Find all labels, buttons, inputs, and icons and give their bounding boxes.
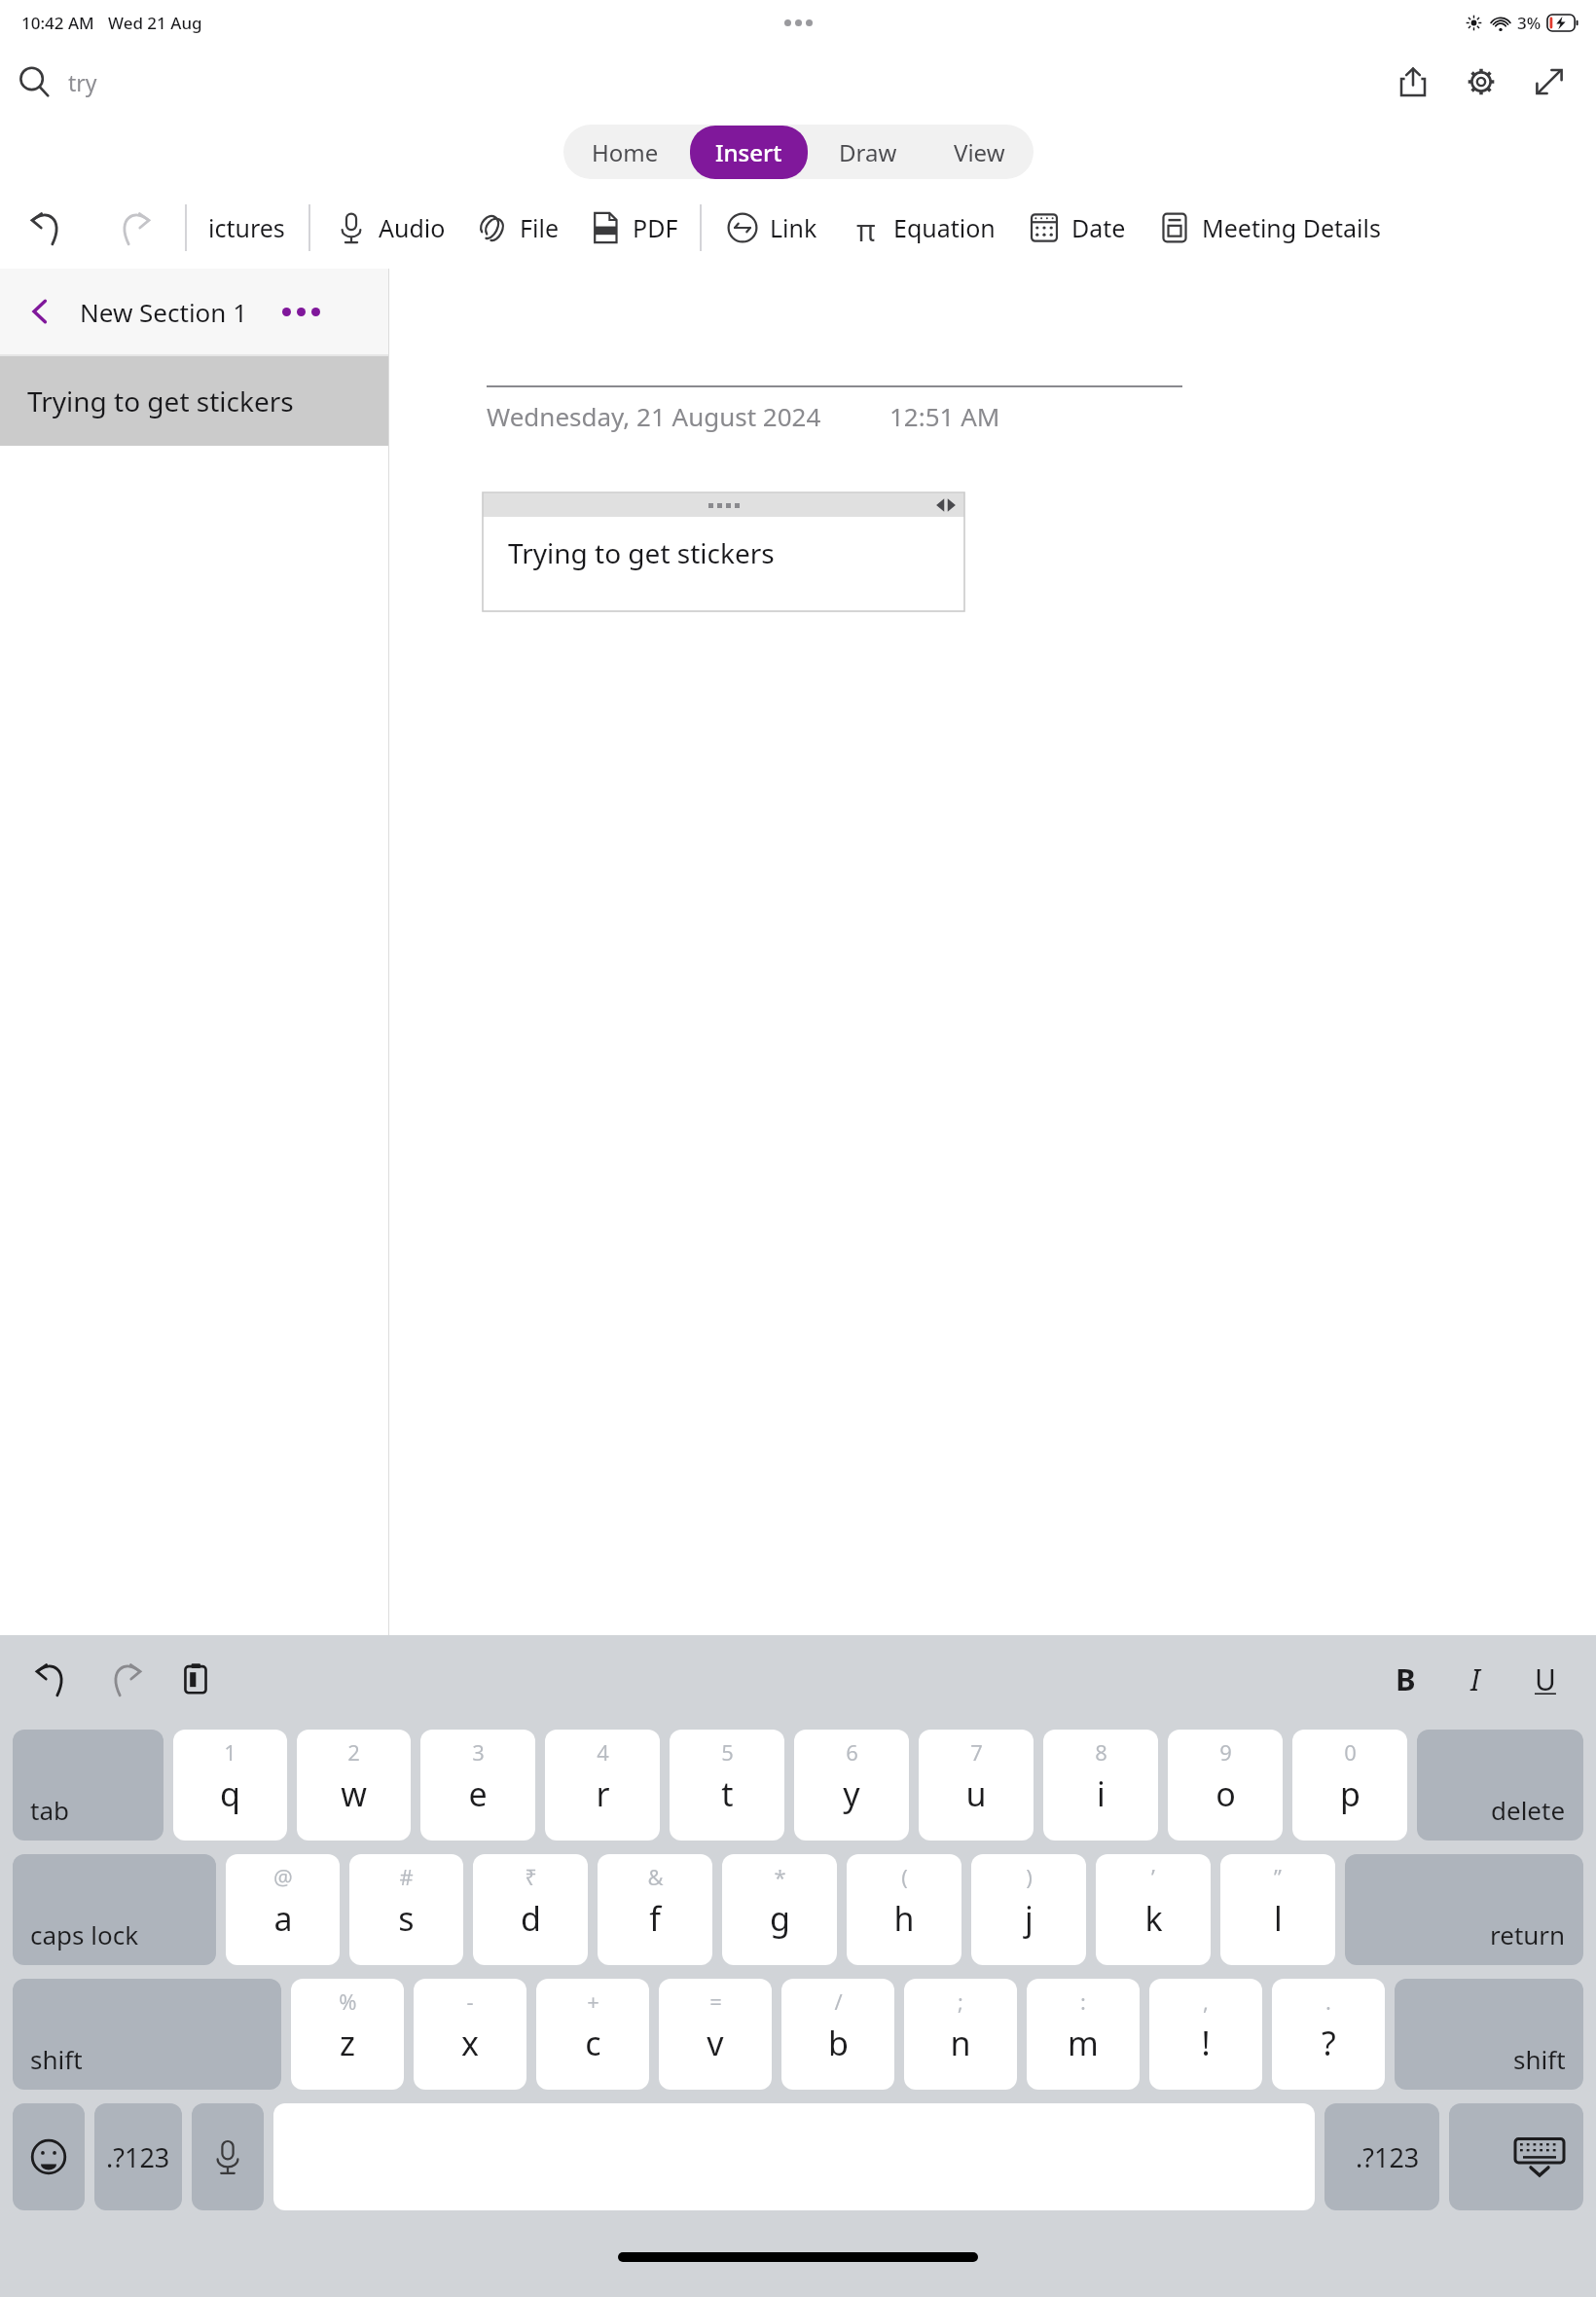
button[interactable]: View	[928, 126, 1031, 179]
staticText: o	[1215, 1771, 1236, 1816]
button[interactable]: Emoji	[13, 2103, 85, 2210]
staticText: v	[707, 2021, 724, 2065]
button[interactable]: I	[1448, 1652, 1503, 1706]
button[interactable]: tab	[13, 1730, 163, 1841]
button[interactable]: 7	[919, 1730, 1034, 1841]
button[interactable]: Redo	[107, 201, 160, 254]
button[interactable]: %	[291, 1979, 404, 2090]
button[interactable]: ;	[904, 1979, 1017, 2090]
button[interactable]: Redo	[97, 1652, 152, 1706]
button[interactable]: Trying to get stickers	[0, 356, 388, 446]
button[interactable]: ’	[1096, 1854, 1211, 1965]
staticText: s	[398, 1896, 415, 1941]
button[interactable]: shift	[13, 1979, 281, 2090]
staticText: Insert	[715, 136, 782, 168]
staticText: @	[273, 1862, 293, 1891]
button[interactable]: &	[598, 1854, 712, 1965]
staticText: Trying to get stickers	[508, 534, 775, 571]
staticText: j	[1025, 1896, 1034, 1941]
staticText: View	[954, 136, 1005, 168]
button[interactable]: Undo	[25, 1652, 80, 1706]
button[interactable]: return	[1345, 1854, 1583, 1965]
button[interactable]: +	[536, 1979, 649, 2090]
button[interactable]: Link	[721, 202, 821, 253]
button[interactable]: File	[471, 202, 562, 253]
staticText: )	[1026, 1862, 1033, 1891]
staticText: New Section 1	[80, 295, 248, 329]
button[interactable]	[273, 2103, 1315, 2210]
button[interactable]: 8	[1043, 1730, 1158, 1841]
staticText: shift	[1513, 2042, 1566, 2076]
button[interactable]: Paste	[169, 1652, 224, 1706]
button[interactable]: Back	[0, 269, 388, 354]
staticText: z	[340, 2021, 355, 2065]
button[interactable]: U	[1518, 1652, 1573, 1706]
staticText: Draw	[839, 136, 897, 168]
staticText: 6	[846, 1737, 858, 1767]
button[interactable]: :	[1027, 1979, 1140, 2090]
button[interactable]: ,	[1149, 1979, 1262, 2090]
staticText: ₹	[525, 1862, 537, 1891]
button[interactable]: =	[659, 1979, 772, 2090]
button[interactable]: Trying to get stickers	[483, 517, 964, 612]
staticText: :	[1080, 1987, 1086, 2016]
staticText: Meeting Details	[1202, 211, 1381, 244]
button[interactable]: delete	[1417, 1730, 1583, 1841]
staticText: 12:51 AM	[889, 399, 1000, 433]
staticText: Audio	[379, 211, 446, 244]
button[interactable]: 1	[173, 1730, 287, 1841]
button[interactable]: Undo	[21, 201, 74, 254]
button[interactable]: ictures	[202, 203, 291, 252]
button[interactable]: -	[414, 1979, 526, 2090]
button[interactable]: Insert	[690, 126, 808, 179]
button[interactable]: Settings	[1456, 56, 1506, 107]
button[interactable]: ”	[1220, 1854, 1335, 1965]
button[interactable]: 0	[1292, 1730, 1407, 1841]
button[interactable]: *	[722, 1854, 837, 1965]
button[interactable]: More options	[273, 302, 329, 322]
button[interactable]: 9	[1168, 1730, 1283, 1841]
staticText: Link	[770, 211, 817, 244]
button[interactable]: .?123	[1324, 2103, 1439, 2210]
button[interactable]: #	[349, 1854, 463, 1965]
button[interactable]: Home	[566, 126, 684, 179]
button[interactable]: Meeting Details	[1153, 202, 1385, 253]
button[interactable]: Hide keyboard	[1449, 2103, 1583, 2210]
button[interactable]: π	[845, 202, 999, 253]
button[interactable]: @	[226, 1854, 340, 1965]
button[interactable]: /	[781, 1979, 894, 2090]
staticText: l	[1274, 1896, 1283, 1941]
button[interactable]: ₹	[473, 1854, 588, 1965]
button[interactable]: Expand	[1524, 56, 1575, 107]
button[interactable]: Draw	[814, 126, 923, 179]
staticText: y	[843, 1771, 860, 1816]
button[interactable]: Share	[1388, 56, 1438, 107]
button[interactable]: (	[847, 1854, 961, 1965]
staticText: q	[220, 1771, 240, 1816]
button[interactable]: 5	[670, 1730, 784, 1841]
staticText: !	[1201, 2021, 1211, 2065]
staticText: c	[585, 2021, 601, 2065]
button[interactable]: Date	[1023, 202, 1130, 253]
staticText: 7	[970, 1737, 983, 1767]
button[interactable]: .	[1272, 1979, 1385, 2090]
button[interactable]: 6	[794, 1730, 909, 1841]
staticText: 8	[1095, 1737, 1107, 1767]
button[interactable]: )	[971, 1854, 1086, 1965]
staticText: #	[399, 1862, 414, 1891]
button[interactable]: 2	[297, 1730, 411, 1841]
button[interactable]: Dictation	[192, 2103, 264, 2210]
staticText: u	[965, 1771, 987, 1816]
button[interactable]: shift	[1395, 1979, 1583, 2090]
staticText: U	[1535, 1659, 1556, 1699]
button[interactable]: Search	[18, 65, 97, 98]
button[interactable]: caps lock	[13, 1854, 216, 1965]
button[interactable]: 4	[545, 1730, 660, 1841]
button[interactable]: .?123	[94, 2103, 182, 2210]
button[interactable]: Audio	[330, 202, 450, 253]
button[interactable]: PDF	[584, 202, 682, 253]
staticText: (	[901, 1862, 908, 1891]
button[interactable]: B	[1378, 1652, 1433, 1706]
button[interactable]: 3	[420, 1730, 535, 1841]
staticText: return	[1490, 1917, 1566, 1951]
